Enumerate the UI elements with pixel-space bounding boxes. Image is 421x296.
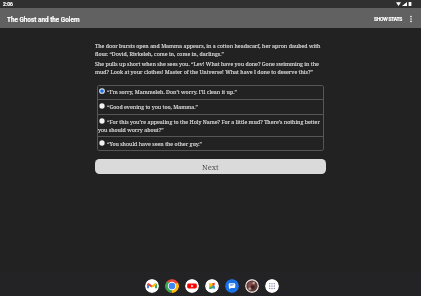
staticText: 2:06 <box>3 1 13 7</box>
button[interactable]: YouTube <box>185 279 199 293</box>
button[interactable]: “You should have seen the other guy.” <box>97 137 324 151</box>
button[interactable]: “For this you’re appealing to the Holy N… <box>97 115 324 136</box>
button[interactable]: Gmail <box>145 279 159 293</box>
staticText: The Ghost and the Golem <box>7 16 80 24</box>
button[interactable]: “I’m sorry, Mammeleh. Don’t worry. I’ll … <box>97 85 324 99</box>
staticText: Next <box>202 162 219 172</box>
staticText: “I’m sorry, Mammeleh. Don’t worry. I’ll … <box>98 88 322 95</box>
staticText: SHOW STATS <box>374 16 403 22</box>
button[interactable]: Chrome <box>165 279 179 293</box>
button[interactable]: Messages <box>225 279 239 293</box>
staticText: “Good evening to you too, Mamma.” <box>98 103 322 110</box>
button[interactable]: All apps <box>265 279 279 293</box>
button[interactable]: “Good evening to you too, Mamma.” <box>97 100 324 114</box>
button[interactable]: Google Photos <box>205 279 219 293</box>
button[interactable]: Profile <box>245 279 259 293</box>
staticText: The door bursts open and Mamma appears, … <box>95 42 326 57</box>
staticText: “You should have seen the other guy.” <box>98 140 322 147</box>
staticText: She pulls up short when she sees you. “L… <box>95 60 326 75</box>
button[interactable]: More options <box>403 8 419 28</box>
button[interactable]: Next <box>95 159 326 174</box>
staticText: “For this you’re appealing to the Holy N… <box>98 118 322 133</box>
button[interactable]: SHOW STATS <box>371 8 406 28</box>
